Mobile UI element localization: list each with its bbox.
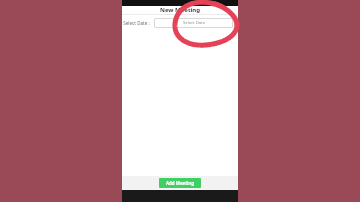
staticText: New Meeting	[160, 6, 200, 14]
staticText: Add Meeting	[166, 180, 194, 186]
staticText: Select Date	[183, 20, 205, 26]
button[interactable]: Select Date	[154, 18, 233, 28]
staticText: Select Date :	[123, 20, 150, 26]
button[interactable]: Add Meeting	[159, 178, 201, 188]
